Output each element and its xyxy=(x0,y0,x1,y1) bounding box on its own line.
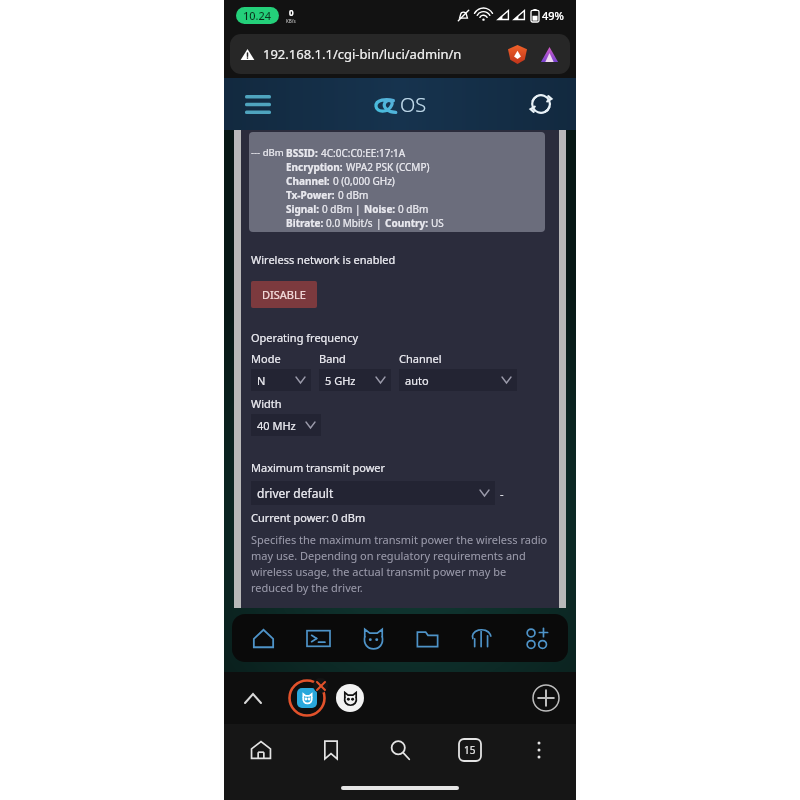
staticText: KB/s xyxy=(286,18,296,24)
button[interactable]: More options xyxy=(520,731,558,769)
button[interactable]: Cat xyxy=(356,621,390,655)
button[interactable]: Refresh xyxy=(524,87,558,121)
button[interactable]: 40 MHz xyxy=(251,414,321,436)
staticText: Bitrate: xyxy=(286,216,326,230)
button[interactable]: Files xyxy=(410,621,444,655)
button[interactable]: Current tab xyxy=(288,679,326,717)
staticText: 10.24 xyxy=(243,8,272,23)
staticText: Band xyxy=(319,351,346,366)
button[interactable]: Brave Shields xyxy=(506,43,528,65)
staticText: Channel: xyxy=(286,174,333,188)
staticText: 40 MHz xyxy=(257,418,296,433)
button[interactable]: Statistics xyxy=(465,621,499,655)
staticText: N xyxy=(257,373,266,388)
staticText: 15 xyxy=(464,743,476,757)
staticText: US xyxy=(431,216,444,230)
button[interactable]: Profile xyxy=(538,43,560,65)
staticText: Maximum transmit power xyxy=(251,460,386,475)
button[interactable]: Tabs: 15 xyxy=(451,731,489,769)
button[interactable]: Home xyxy=(246,621,280,655)
button[interactable]: Home xyxy=(242,731,280,769)
staticText: - xyxy=(500,486,504,501)
staticText: BSSID: xyxy=(286,146,321,160)
staticText: | xyxy=(376,216,385,230)
staticText: 5 GHz xyxy=(325,373,356,388)
staticText: DISABLE xyxy=(262,287,306,302)
button[interactable]: Bookmarks xyxy=(312,731,350,769)
staticText: | xyxy=(355,202,364,216)
staticText: --- dBm xyxy=(251,146,284,159)
staticText: Encryption: xyxy=(286,160,346,174)
staticText: WPA2 PSK (CCMP) xyxy=(346,160,430,174)
staticText: 192.168.1.1/cgi-bin/luci/admin/n xyxy=(263,45,462,63)
staticText: Noise: xyxy=(364,202,398,216)
button[interactable]: driver default xyxy=(251,481,495,505)
staticText: Width xyxy=(251,396,282,411)
button[interactable]: 5 GHz xyxy=(319,369,391,391)
staticText: Current power: 0 dBm xyxy=(251,510,366,525)
button[interactable]: 192.168.1.1/cgi-bin/luci/admin/n xyxy=(230,34,570,74)
staticText: Channel xyxy=(399,351,442,366)
button[interactable]: New tab xyxy=(530,682,562,714)
staticText: 0 dBm xyxy=(398,202,429,216)
staticText: Tx-Power: xyxy=(286,188,338,202)
button[interactable]: auto xyxy=(399,369,517,391)
staticText: 0 xyxy=(289,7,294,18)
staticText: 0.0 Mbit/s xyxy=(326,216,376,230)
button[interactable]: Tab xyxy=(336,684,364,712)
staticText: 4C:0C:C0:EE:17:1A xyxy=(321,146,406,160)
button[interactable]: Terminal xyxy=(301,621,335,655)
staticText: OS xyxy=(400,91,427,118)
staticText: Mode xyxy=(251,351,281,366)
staticText: Signal: xyxy=(286,202,322,216)
button[interactable]: Menu xyxy=(242,88,274,120)
button[interactable]: Expand tabs xyxy=(238,683,268,713)
staticText: 0 (0,000 GHz) xyxy=(333,174,395,188)
button[interactable]: N xyxy=(251,369,311,391)
staticText: driver default xyxy=(257,485,334,501)
staticText: 0 dBm xyxy=(322,202,355,216)
staticText: Operating frequency xyxy=(251,330,359,345)
button[interactable]: Search xyxy=(381,731,419,769)
staticText: auto xyxy=(405,373,429,388)
staticText: Country: xyxy=(385,216,431,230)
staticText: 0 dBm xyxy=(338,188,369,202)
button[interactable]: Add app xyxy=(520,621,554,655)
staticText: Wireless network is enabled xyxy=(251,252,396,267)
button[interactable]: DISABLE xyxy=(251,281,317,308)
staticText: 49% xyxy=(542,8,564,23)
staticText: Specifies the maximum transmit power the… xyxy=(251,532,549,595)
